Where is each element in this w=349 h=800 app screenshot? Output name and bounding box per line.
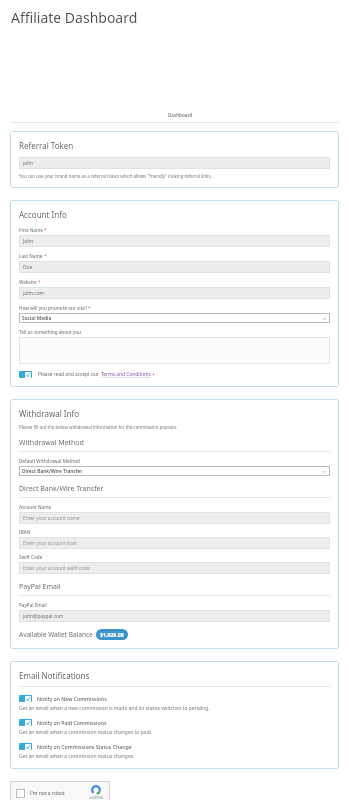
button[interactable]: Toggle on — [19, 695, 330, 712]
staticText: You can use your brand name as a referra… — [19, 173, 212, 179]
staticText: Enter your account swift code — [23, 565, 90, 572]
staticText: Terms and Conditions — [101, 371, 151, 378]
button[interactable]: Enter your account iban — [19, 537, 330, 549]
staticText: How will you promote our site? — [19, 305, 87, 311]
staticText: Get an email when a commission status ch… — [19, 729, 153, 736]
button[interactable] — [19, 337, 330, 364]
staticText: Get an email when a new commission is ma… — [19, 705, 210, 712]
staticText: Direct Bank/Wire Transfer — [19, 484, 104, 494]
staticText: Get an email when a commission status ch… — [19, 753, 135, 760]
staticText: Tell us something about you — [19, 329, 81, 335]
staticText: First Name — [19, 227, 43, 233]
staticText: Social Media — [22, 315, 52, 322]
button[interactable]: Doe — [19, 261, 330, 273]
staticText: Dashboard — [168, 112, 193, 118]
staticText: Referral Token — [19, 140, 74, 151]
staticText: Notify on New Commissions — [37, 695, 107, 702]
button[interactable]: john@paypal.com — [19, 610, 330, 622]
staticText: john — [23, 160, 34, 167]
staticText: * — [38, 279, 41, 285]
button[interactable]: Toggle on — [19, 371, 155, 378]
button[interactable]: Social Media — [19, 313, 330, 323]
button[interactable]: Toggle on — [19, 743, 32, 750]
staticText: PayPal Email — [19, 602, 47, 608]
button[interactable]: Toggle on — [19, 719, 330, 736]
button[interactable]: Toggle on — [19, 743, 330, 760]
staticText: Notify on Paid Commissions — [37, 719, 107, 726]
staticText: Please fill out the below withdrawal inf… — [19, 424, 178, 430]
staticText: PayPal Email — [19, 582, 61, 592]
button[interactable]: John — [19, 235, 330, 247]
staticText: * — [44, 227, 47, 233]
staticText: * — [88, 305, 91, 311]
staticText: * — [151, 372, 155, 378]
staticText: Default Withdrawal Method — [19, 458, 80, 464]
staticText: Withdrawal Info — [19, 408, 80, 419]
staticText: Withdrawal Method — [19, 438, 84, 448]
staticText: Email Notifications — [19, 670, 90, 681]
button[interactable]: Dashboard — [11, 112, 349, 122]
staticText: reCAPTCHA — [89, 796, 103, 800]
staticText: Website — [19, 279, 37, 285]
staticText: Account Info — [19, 209, 67, 220]
staticText: Please read and accept our — [38, 371, 101, 378]
button[interactable]: john.com — [19, 287, 330, 299]
button[interactable]: Toggle on — [19, 719, 32, 726]
staticText: John — [23, 238, 34, 245]
staticText: john.com — [23, 290, 45, 297]
staticText: Direct Bank/Wire Transfer — [22, 468, 83, 475]
staticText: IBAN — [19, 529, 31, 535]
staticText: Account Name — [19, 504, 52, 510]
button[interactable]: Enter your account swift code — [19, 562, 330, 574]
staticText: I'm not a robot — [30, 790, 65, 797]
button[interactable]: Enter your account name — [19, 512, 330, 524]
staticText: Enter your account iban — [23, 540, 77, 547]
staticText: Enter your account name — [23, 515, 80, 522]
staticText: Doe — [23, 264, 33, 271]
staticText: * — [44, 253, 47, 259]
staticText: Affiliate Dashboard — [11, 8, 138, 27]
button[interactable]: john — [19, 157, 330, 169]
staticText: Swift Code — [19, 554, 43, 560]
staticText: Last Name — [19, 253, 43, 259]
button[interactable]: Direct Bank/Wire Transfer — [19, 466, 330, 476]
staticText: $1,029.00 — [100, 631, 124, 638]
staticText: john@paypal.com — [23, 613, 64, 620]
staticText: Notify on Commissions Status Change — [37, 743, 132, 750]
button[interactable]: I'm not a robot — [10, 781, 110, 800]
staticText: Available Wallet Balance — [19, 630, 93, 639]
button[interactable]: Toggle on — [19, 695, 32, 702]
button[interactable]: Toggle on — [19, 371, 32, 378]
